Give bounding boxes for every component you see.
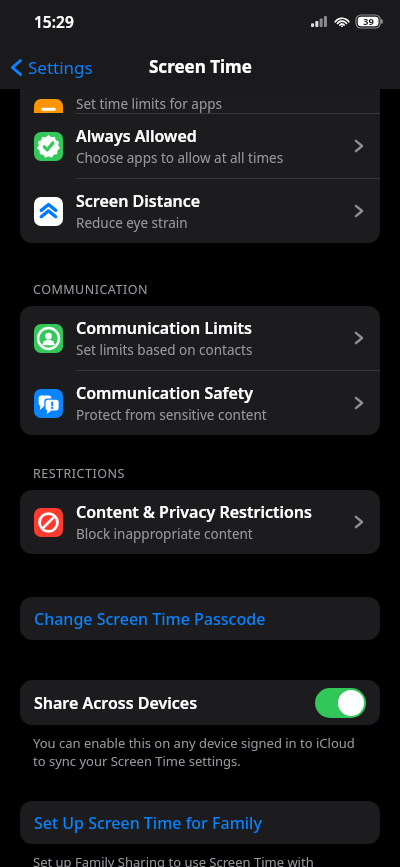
- staticText: Set up Family Sharing to use Screen Time…: [33, 853, 314, 867]
- staticText: Screen Distance: [76, 190, 201, 212]
- button[interactable]: Communication Safety: [20, 371, 380, 435]
- staticText: Block inappropriate content: [76, 525, 253, 543]
- staticText: Communication Safety: [76, 382, 254, 404]
- staticText: Share Across Devices: [34, 692, 315, 714]
- staticText: Change Screen Time Passcode: [34, 608, 266, 630]
- button[interactable]: Change Screen Time Passcode: [20, 597, 380, 640]
- staticText: Content & Privacy Restrictions: [76, 501, 312, 523]
- button[interactable]: Screen Distance: [20, 179, 380, 243]
- staticText: Set time limits for apps: [76, 95, 222, 113]
- staticText: You can enable this on any device signed…: [33, 734, 366, 770]
- staticText: RESTRICTIONS: [33, 465, 125, 482]
- staticText: Protect from sensitive content: [76, 406, 267, 424]
- button[interactable]: Set Up Screen Time for Family: [20, 801, 380, 844]
- staticText: Communication Limits: [76, 317, 252, 339]
- button[interactable]: Share Across Devices: [20, 680, 380, 725]
- staticText: Set Up Screen Time for Family: [34, 812, 262, 834]
- staticText: 15:29: [34, 11, 74, 32]
- staticText: Set limits based on contacts: [76, 341, 253, 359]
- button[interactable]: Always Allowed: [20, 114, 380, 178]
- button[interactable]: Communication Limits: [20, 306, 380, 370]
- staticText: Always Allowed: [76, 125, 197, 147]
- staticText: 39: [363, 15, 374, 28]
- staticText: Settings: [28, 56, 93, 79]
- button[interactable]: Set time limits for apps: [20, 89, 380, 113]
- button[interactable]: Content & Privacy Restrictions: [20, 490, 380, 554]
- staticText: Reduce eye strain: [76, 214, 188, 232]
- button[interactable]: Settings: [0, 45, 101, 89]
- staticText: Choose apps to allow at all times: [76, 149, 284, 167]
- staticText: Screen Time: [149, 55, 252, 78]
- staticText: COMMUNICATION: [33, 281, 148, 298]
